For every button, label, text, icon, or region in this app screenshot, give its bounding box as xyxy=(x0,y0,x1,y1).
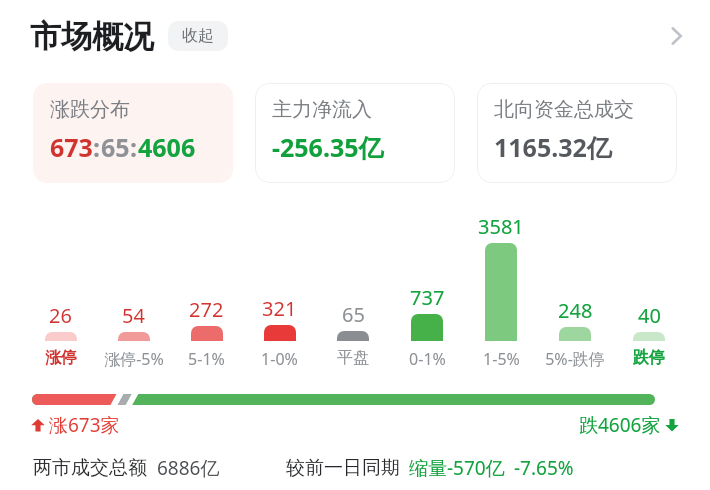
button[interactable]: 54 xyxy=(97,205,170,341)
staticText: 65 xyxy=(342,301,365,328)
staticText: 跌4606家 xyxy=(579,412,661,438)
button[interactable]: More xyxy=(650,10,702,62)
staticText: 北向资金总成交 xyxy=(494,97,634,122)
staticText: : xyxy=(130,130,138,164)
staticText: 涨673家 xyxy=(49,412,120,438)
button[interactable]: 65 xyxy=(316,205,390,341)
staticText: 26 xyxy=(49,302,72,329)
staticText: 1165.32亿 xyxy=(494,130,612,164)
staticText: 跌停 xyxy=(633,348,665,368)
staticText: 市场概况 xyxy=(30,17,154,56)
staticText: -7.65% xyxy=(514,455,574,481)
button[interactable]: 3581 xyxy=(464,205,538,341)
staticText: 涨停 xyxy=(45,348,77,368)
staticText: -256.35亿 xyxy=(272,130,384,164)
staticText: 平盘 xyxy=(337,348,369,368)
staticText: 主力净流入 xyxy=(272,97,372,122)
staticText: 248 xyxy=(558,297,593,324)
staticText: 54 xyxy=(122,302,145,329)
staticText: 两市成交总额 xyxy=(33,456,147,480)
staticText: 4606 xyxy=(138,130,196,164)
button[interactable]: 涨跌分布 xyxy=(33,83,233,183)
staticText: 673 xyxy=(50,130,93,164)
button[interactable]: 272 xyxy=(170,205,243,341)
staticText: 5-1% xyxy=(188,348,225,370)
staticText: 3581 xyxy=(478,213,524,240)
button[interactable]: 40 xyxy=(612,205,686,341)
staticText: 较前一日同期 xyxy=(286,456,400,480)
staticText: 缩量-570亿 xyxy=(409,455,505,481)
staticText: 40 xyxy=(638,302,661,329)
button[interactable]: 321 xyxy=(243,205,316,341)
staticText: 1-0% xyxy=(261,348,298,370)
staticText: 0-1% xyxy=(409,348,446,370)
staticText: 5%-跌停 xyxy=(545,348,605,370)
staticText: 涨停-5% xyxy=(104,348,164,370)
button[interactable]: 248 xyxy=(538,205,612,341)
staticText: 收起 xyxy=(182,26,214,46)
staticText: 321 xyxy=(262,295,297,322)
staticText: : xyxy=(93,130,101,164)
button[interactable]: 737 xyxy=(390,205,464,341)
staticText: 737 xyxy=(410,284,445,311)
staticText: 272 xyxy=(189,296,224,323)
button[interactable]: 26 xyxy=(24,205,97,341)
button[interactable]: 主力净流入 xyxy=(255,83,455,183)
staticText: 6886亿 xyxy=(157,455,220,481)
staticText: 65 xyxy=(101,130,130,164)
button[interactable]: 收起 xyxy=(168,21,228,51)
staticText: 1-5% xyxy=(483,348,520,370)
staticText: 涨跌分布 xyxy=(50,97,130,122)
button[interactable]: 北向资金总成交 xyxy=(477,83,677,183)
